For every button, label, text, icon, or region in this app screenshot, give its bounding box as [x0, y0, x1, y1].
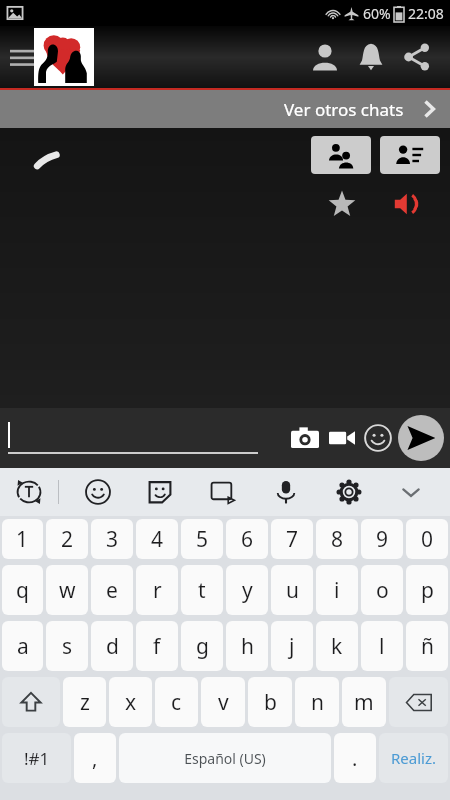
button[interactable]: 5 — [181, 519, 223, 559]
staticText: p — [421, 576, 434, 605]
button[interactable]: Group members — [311, 136, 371, 174]
staticText: 6 — [241, 525, 254, 554]
button[interactable]: b — [248, 677, 292, 727]
button[interactable]: Translate — [0, 468, 58, 516]
staticText: y — [242, 576, 253, 605]
button[interactable]: . — [334, 733, 376, 783]
staticText: m — [354, 688, 374, 717]
button[interactable]: Menu — [0, 35, 44, 79]
button[interactable]: Profile — [302, 34, 348, 80]
button[interactable]: h — [226, 621, 268, 671]
button[interactable]: emoji — [74, 468, 122, 516]
staticText: 5 — [196, 525, 209, 554]
staticText: g — [196, 632, 209, 661]
button[interactable]: mic — [262, 468, 310, 516]
button[interactable]: w — [46, 565, 88, 615]
staticText: 8 — [331, 525, 344, 554]
staticText: t — [198, 576, 206, 605]
button[interactable]: 0 — [406, 519, 448, 559]
button[interactable]: ñ — [406, 621, 448, 671]
button[interactable]: f — [136, 621, 178, 671]
staticText: o — [376, 576, 389, 605]
button[interactable]: e — [91, 565, 133, 615]
staticText: l — [379, 632, 385, 661]
button[interactable]: 1 — [2, 519, 43, 559]
button[interactable]: Emoji — [360, 420, 396, 456]
button[interactable]: Favorite — [322, 184, 362, 224]
staticText: 4 — [151, 525, 164, 554]
button[interactable]: , — [74, 733, 116, 783]
button[interactable]: 9 — [361, 519, 403, 559]
button[interactable]: i — [316, 565, 358, 615]
staticText: k — [331, 632, 343, 661]
button[interactable]: n — [295, 677, 339, 727]
staticText: f — [153, 632, 161, 661]
button[interactable]: Shift — [2, 677, 60, 727]
button[interactable]: gif — [199, 468, 247, 516]
staticText: 7 — [286, 525, 299, 554]
staticText: q — [16, 576, 29, 605]
button[interactable]: !#1 — [2, 733, 71, 783]
button[interactable]: settings — [325, 468, 373, 516]
button[interactable]: 3 — [91, 519, 133, 559]
button[interactable]: Sound — [388, 184, 428, 224]
button[interactable]: m — [342, 677, 386, 727]
button[interactable]: a — [2, 621, 43, 671]
button[interactable]: 4 — [136, 519, 178, 559]
staticText: 1 — [16, 525, 29, 554]
staticText: , — [92, 745, 98, 772]
button[interactable]: q — [2, 565, 43, 615]
button[interactable]: Notifications — [348, 34, 394, 80]
button[interactable]: 8 — [316, 519, 358, 559]
button[interactable]: Send — [398, 415, 444, 461]
button[interactable]: p — [406, 565, 448, 615]
button[interactable]: r — [136, 565, 178, 615]
button[interactable]: z — [63, 677, 106, 727]
staticText: v — [218, 688, 229, 717]
button[interactable]: y — [226, 565, 268, 615]
staticText: 3 — [106, 525, 119, 554]
button[interactable]: o — [361, 565, 403, 615]
button[interactable]: j — [271, 621, 313, 671]
button[interactable]: Video — [324, 420, 360, 456]
staticText: a — [17, 632, 29, 661]
button[interactable]: c — [155, 677, 198, 727]
staticText: i — [334, 576, 340, 605]
button[interactable]: d — [91, 621, 133, 671]
button[interactable]: Share — [394, 34, 440, 80]
staticText: Realiz. — [391, 748, 437, 768]
staticText: Español (US) — [184, 749, 266, 768]
button[interactable]: chevron — [387, 468, 435, 516]
button[interactable]: k — [316, 621, 358, 671]
button[interactable]: 7 — [271, 519, 313, 559]
button[interactable]: Realiz. — [379, 733, 448, 783]
button[interactable]: Backspace — [389, 677, 448, 727]
button[interactable]: Camera — [286, 419, 324, 457]
staticText: j — [289, 632, 295, 661]
button[interactable]: u — [271, 565, 313, 615]
staticText: 22:08 — [408, 4, 444, 23]
button[interactable]: Español (US) — [119, 733, 331, 783]
button[interactable]: Contact details — [380, 136, 440, 174]
staticText: b — [264, 688, 277, 717]
button[interactable]: t — [181, 565, 223, 615]
button[interactable]: 2 — [46, 519, 88, 559]
button[interactable]: s — [46, 621, 88, 671]
button[interactable]: Ver otros chats — [0, 90, 450, 128]
button[interactable]: sticker — [136, 468, 184, 516]
staticText: 0 — [421, 525, 434, 554]
button[interactable]: l — [361, 621, 403, 671]
button[interactable]: g — [181, 621, 223, 671]
staticText: h — [241, 632, 254, 661]
staticText: x — [125, 688, 137, 717]
staticText: 2 — [61, 525, 74, 554]
staticText: w — [59, 576, 76, 605]
staticText: n — [311, 688, 324, 717]
button[interactable]: Profile logo — [34, 28, 94, 86]
button[interactable]: v — [201, 677, 245, 727]
button[interactable]: 6 — [226, 519, 268, 559]
button[interactable]: x — [109, 677, 152, 727]
staticText: !#1 — [24, 747, 50, 770]
staticText: u — [286, 576, 299, 605]
staticText: ñ — [421, 632, 434, 661]
